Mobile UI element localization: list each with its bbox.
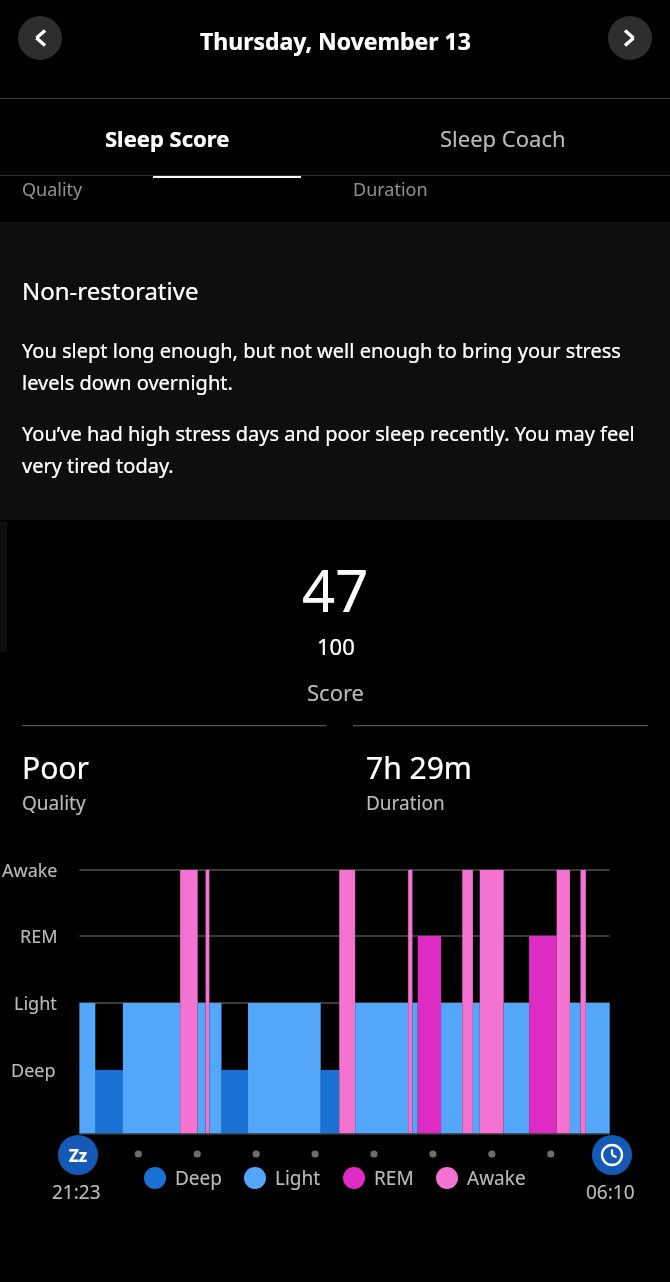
staticText: Light <box>275 1165 321 1191</box>
button[interactable]: Deep <box>144 1165 222 1191</box>
staticText: Sleep Score <box>105 123 230 153</box>
staticText: Quality <box>22 177 83 202</box>
staticText: Thursday, November 13 <box>200 25 471 56</box>
staticText: Non-restorative <box>22 274 199 307</box>
button[interactable]: Sleep start <box>58 1135 98 1175</box>
staticText: Awake <box>2 858 58 883</box>
button[interactable]: Light <box>244 1165 321 1191</box>
staticText: Zz <box>69 1144 88 1167</box>
staticText: Awake <box>467 1165 526 1191</box>
button[interactable]: Awake <box>436 1165 526 1191</box>
staticText: You’ve had high stress days and poor sle… <box>22 420 648 479</box>
staticText: Sleep Coach <box>440 123 566 153</box>
button[interactable]: Sleep Coach <box>335 99 670 184</box>
staticText: Deep <box>175 1165 222 1191</box>
button[interactable]: Wake time <box>592 1135 632 1175</box>
staticText: Poor <box>22 747 89 788</box>
staticText: Quality <box>22 790 86 816</box>
staticText: REM <box>374 1165 414 1191</box>
staticText: REM <box>20 924 58 949</box>
staticText: Light <box>14 991 57 1016</box>
staticText: Deep <box>11 1058 56 1083</box>
staticText: 06:10 <box>586 1179 635 1205</box>
staticText: 7h 29m <box>366 747 472 788</box>
staticText: You slept long enough, but not well enou… <box>22 337 648 396</box>
staticText: 21:23 <box>52 1179 101 1205</box>
staticText: 47 <box>302 550 369 629</box>
button[interactable]: REM <box>343 1165 414 1191</box>
staticText: 100 <box>317 631 355 661</box>
staticText: Duration <box>353 177 428 202</box>
button[interactable]: Previous day <box>18 16 62 60</box>
staticText: Score <box>307 677 365 707</box>
button[interactable]: Sleep Score <box>0 99 335 184</box>
staticText: Duration <box>366 790 445 816</box>
button[interactable]: Next day <box>608 16 652 60</box>
